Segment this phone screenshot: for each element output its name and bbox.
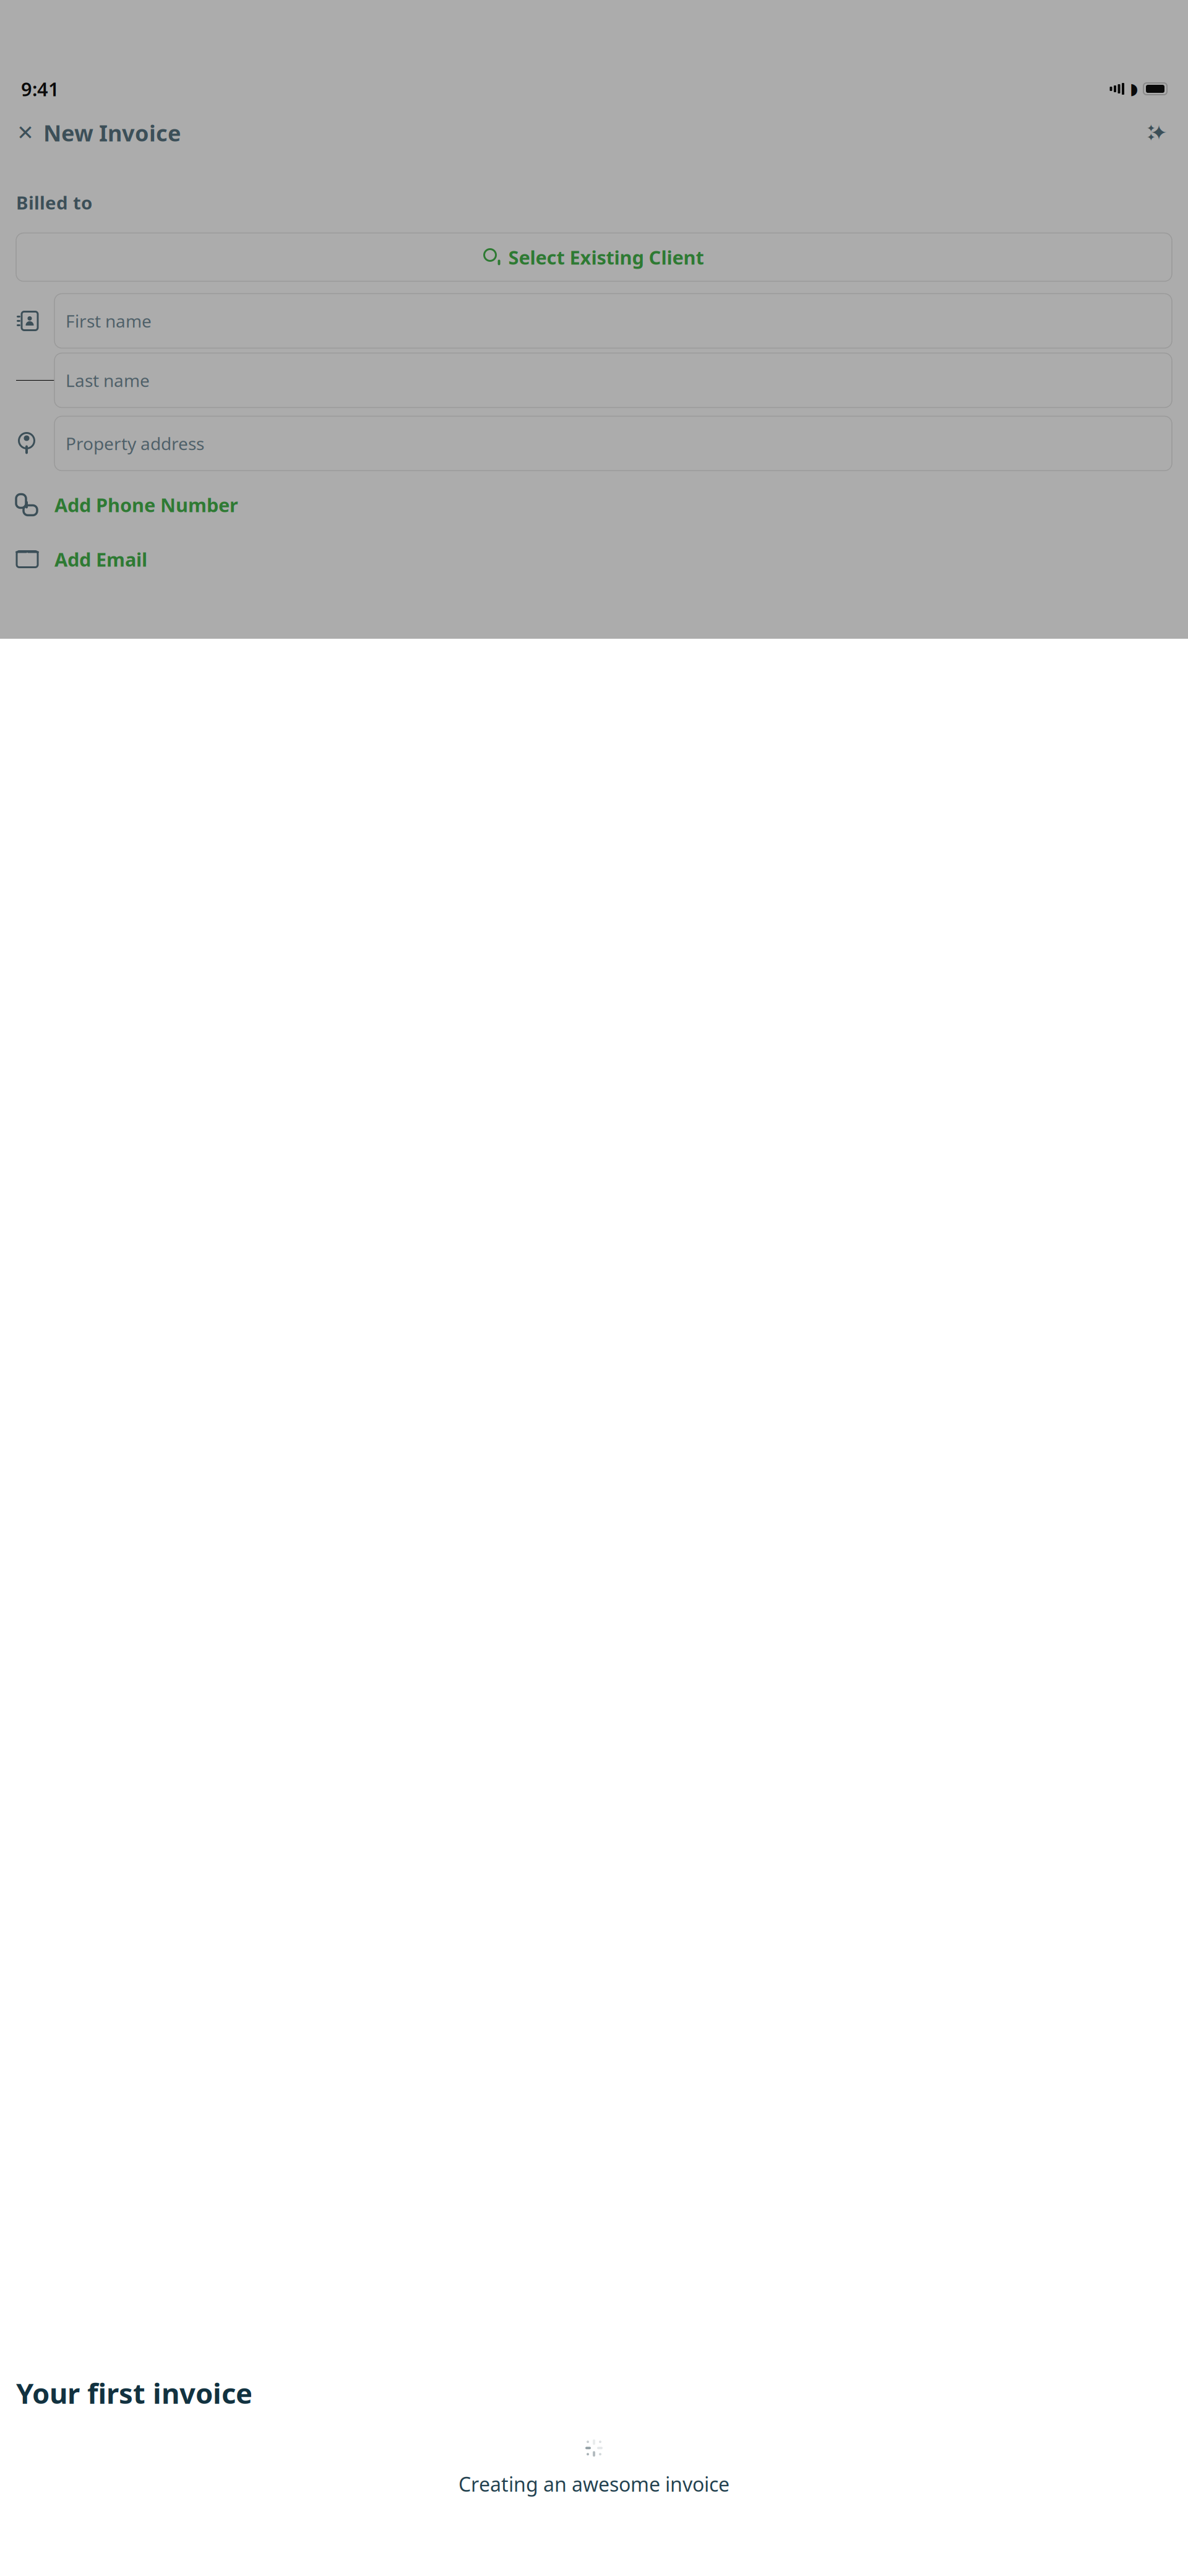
staticText: ◗ (1130, 80, 1138, 98)
staticText: Select Existing Client (508, 245, 704, 270)
staticText: First name (66, 309, 152, 332)
staticText: 9:41 (21, 76, 59, 101)
staticText: ✦ (1147, 122, 1156, 134)
button[interactable]: Close (16, 119, 43, 147)
staticText: Your first invoice (16, 2374, 252, 2411)
staticText: New Invoice (43, 118, 181, 148)
button[interactable]: Add Email (0, 539, 1188, 580)
staticText: ✕ (17, 121, 34, 144)
button[interactable]: AI assist (1142, 118, 1172, 148)
staticText: Billed to (16, 190, 92, 214)
staticText: ✦ (1147, 131, 1156, 143)
staticText: Add Email (54, 547, 147, 572)
button[interactable]: Add Phone Number (0, 484, 1188, 525)
staticText: ✦ (1150, 121, 1168, 144)
staticText: Last name (66, 369, 150, 392)
button[interactable]: Select Existing Client (16, 233, 1172, 281)
staticText: Creating an awesome invoice (458, 2471, 730, 2497)
staticText: Add Phone Number (54, 492, 238, 517)
staticText: Property address (66, 432, 204, 455)
